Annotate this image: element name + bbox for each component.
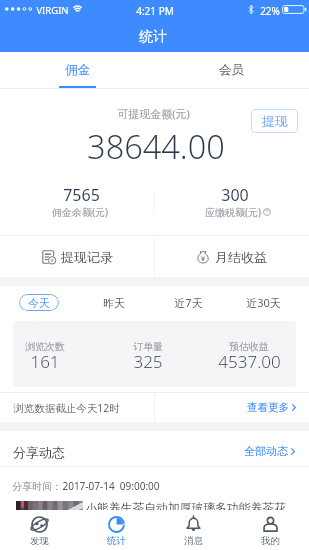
staticText: VIRGIN — [36, 4, 69, 17]
button[interactable]: 我的 — [232, 510, 309, 550]
button[interactable]: 提现 — [251, 109, 298, 133]
staticText: 4537.00 — [218, 350, 281, 373]
staticText: 分享时间： — [12, 480, 62, 493]
staticText: 会员 — [219, 62, 244, 78]
staticText: 小熊养生茶自动加厚玻璃多功能养茶花 — [85, 501, 286, 516]
staticText: 近7天 — [174, 295, 203, 310]
staticText: 佣金余额(元) — [52, 205, 108, 219]
button[interactable]: 昨天 — [88, 294, 140, 311]
button[interactable]: 提现记录 — [0, 236, 154, 277]
button[interactable]: 佣金 — [0, 52, 154, 88]
button[interactable]: 月结收益 — [154, 236, 309, 277]
button[interactable]: 会员 — [154, 52, 309, 88]
staticText: 统计 — [107, 535, 126, 547]
staticText: 325 — [133, 350, 163, 373]
button[interactable]: 发现 — [0, 510, 78, 550]
staticText: 月结收益 — [215, 249, 267, 265]
staticText: 查看更多 — [247, 401, 289, 414]
staticText: 全部动态 — [244, 444, 288, 458]
button[interactable]: 近30天 — [237, 294, 289, 311]
staticText: 300 — [221, 184, 249, 206]
staticText: 22% — [260, 4, 280, 18]
button[interactable]: 近7天 — [162, 294, 214, 311]
staticText: 昨天 — [103, 296, 125, 310]
staticText: 今天 — [28, 296, 50, 310]
staticText: 我的 — [261, 535, 280, 547]
button[interactable]: 分享时间： — [0, 431, 309, 495]
button[interactable]: 查看更多 — [247, 396, 296, 419]
button[interactable]: 全部动态 — [244, 440, 295, 462]
button[interactable]: 消息 — [155, 510, 232, 550]
staticText: 浏览数据截止今天12时 — [13, 401, 120, 415]
staticText: 统计 — [139, 28, 167, 46]
staticText: 近30天 — [246, 295, 281, 310]
staticText: 提现记录 — [61, 249, 113, 265]
staticText: 预估收益 — [229, 340, 269, 353]
staticText: 佣金 — [65, 62, 90, 78]
staticText: 分享动态 — [13, 444, 65, 460]
staticText: 订单量 — [133, 340, 163, 353]
staticText: 应缴税额(元) — [205, 205, 261, 219]
staticText: 38644.00 — [87, 124, 225, 168]
staticText: 161 — [30, 350, 60, 373]
staticText: 浏览次数 — [25, 340, 65, 353]
staticText: 4:21 PM — [136, 4, 174, 18]
staticText: 7565 — [63, 184, 100, 206]
staticText: 发现 — [30, 535, 49, 547]
staticText: 2017-07-14 09:00:00 — [62, 479, 160, 493]
button[interactable]: 今天 — [19, 294, 59, 311]
staticText: 提现 — [262, 113, 288, 129]
staticText: 可提现金额(元) — [117, 106, 190, 121]
staticText: 消息 — [184, 535, 203, 547]
button[interactable]: 统计 — [78, 510, 155, 550]
